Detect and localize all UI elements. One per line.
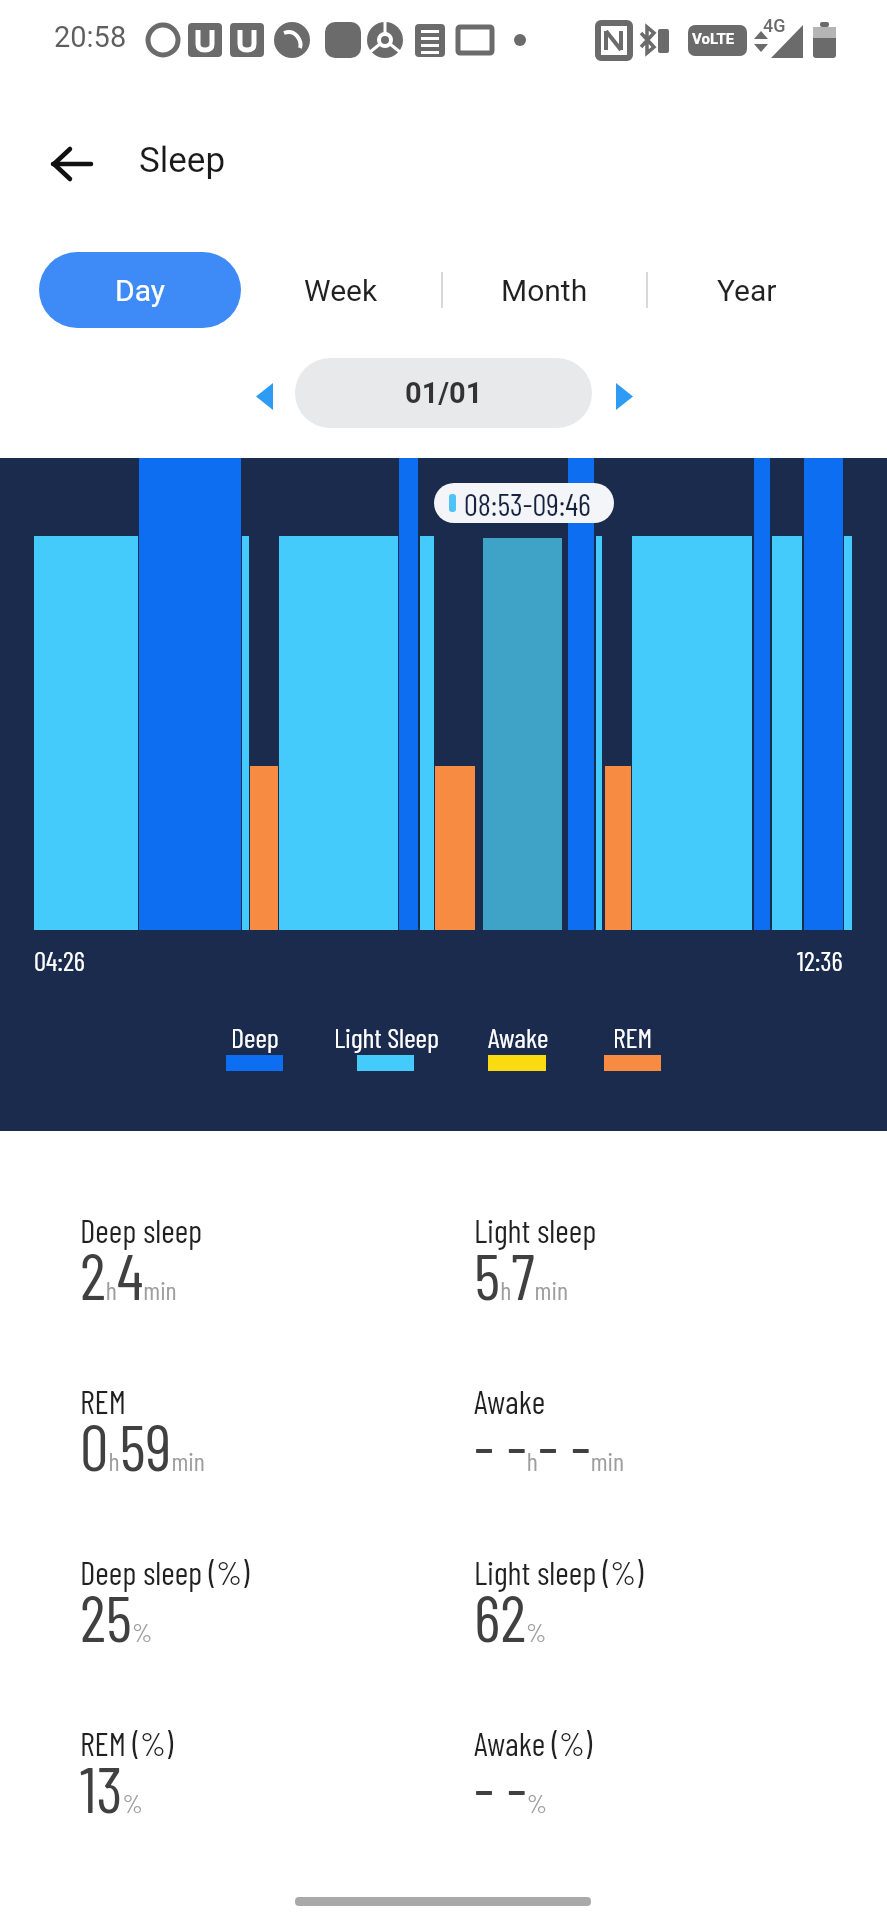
staticText: Deep sleep	[80, 1210, 203, 1250]
staticText: 25%	[80, 1578, 153, 1655]
staticText: - -h- -min	[474, 1407, 625, 1484]
staticText: VoLTE	[692, 30, 735, 48]
button[interactable]: Year	[647, 252, 847, 328]
staticText: REM	[80, 1381, 126, 1421]
staticText: Month	[501, 273, 588, 308]
staticText: REM (%)	[80, 1723, 173, 1763]
staticText: 5h7min	[474, 1236, 568, 1313]
staticText: 20:58	[54, 20, 127, 54]
button[interactable]: Month	[443, 252, 645, 328]
staticText: 4G	[763, 15, 786, 36]
staticText: 0h59min	[80, 1407, 205, 1484]
staticText: Awake	[474, 1381, 546, 1421]
staticText: - -%	[474, 1749, 548, 1826]
staticText: Sleep	[139, 140, 226, 181]
staticText: Week	[304, 273, 378, 308]
staticText: 12:36	[797, 944, 843, 976]
staticText: Deep sleep (%)	[80, 1552, 250, 1592]
button[interactable]	[40, 132, 104, 196]
staticText: Light sleep (%)	[474, 1552, 644, 1592]
staticText: Light Sleep	[334, 1020, 439, 1054]
staticText: REM	[613, 1020, 653, 1054]
staticText: 2h4min	[80, 1236, 177, 1313]
staticText: Day	[115, 273, 165, 308]
button[interactable]: Week	[241, 252, 441, 328]
staticText: 04:26	[34, 944, 85, 976]
staticText: Deep	[231, 1020, 279, 1054]
staticText: Awake	[488, 1020, 549, 1054]
staticText: Year	[717, 273, 777, 308]
button[interactable]	[600, 372, 648, 420]
button[interactable]	[240, 372, 288, 420]
staticText: 62%	[474, 1578, 547, 1655]
button[interactable]: 01/01	[295, 358, 592, 428]
button[interactable]: Day	[39, 252, 241, 328]
staticText: 01/01	[405, 376, 483, 410]
staticText: 08:53-09:46	[464, 485, 591, 522]
staticText: Light sleep	[474, 1210, 597, 1250]
staticText: Awake (%)	[474, 1723, 593, 1763]
staticText: 13%	[80, 1749, 143, 1826]
